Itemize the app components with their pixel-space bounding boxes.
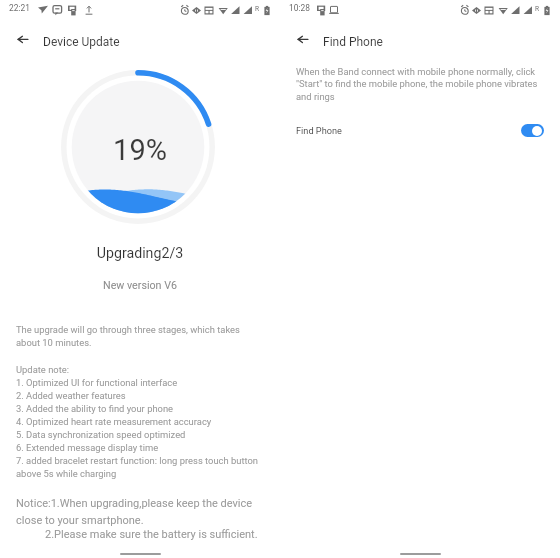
button[interactable]: Find Phone: [280, 118, 560, 142]
staticText: Notice:1.When upgrading,please keep the …: [16, 497, 253, 527]
staticText: 2.Please make sure the battery is suffic…: [45, 528, 258, 541]
staticText: R: [255, 5, 260, 13]
staticText: R: [535, 5, 540, 13]
button[interactable]: Back: [288, 29, 314, 55]
staticText: Find Phone: [323, 35, 383, 49]
staticText: When the Band connect with mobile phone …: [296, 66, 538, 103]
staticText: 22:21: [9, 3, 30, 13]
staticText: New version V6: [0, 279, 280, 292]
staticText: The upgrade will go through three stages…: [16, 324, 240, 348]
staticText: Device Update: [43, 35, 120, 49]
staticText: 10:28: [289, 3, 310, 13]
button[interactable]: Back: [8, 29, 34, 55]
staticText: Update note: 1. Optimized UI for functio…: [16, 364, 259, 479]
staticText: Find Phone: [296, 125, 342, 136]
staticText: Upgrading2/3: [0, 245, 280, 262]
staticText: 19%: [0, 133, 280, 167]
